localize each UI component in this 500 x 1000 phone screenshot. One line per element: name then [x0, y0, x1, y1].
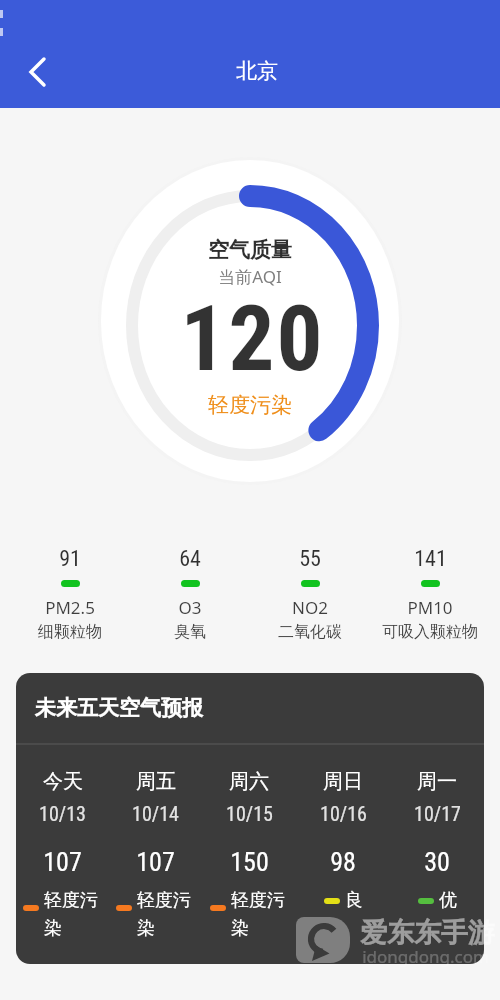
staticText: 细颗粒物 — [38, 622, 102, 642]
staticText: 爱东东手游 — [360, 916, 495, 950]
staticText: O3 — [178, 596, 202, 619]
staticText: 10/13 — [39, 802, 86, 825]
staticText: 未来五天空气预报 — [35, 695, 203, 721]
staticText: 空气质量 — [208, 237, 292, 263]
staticText: 周六 — [229, 769, 269, 794]
staticText: 10/17 — [414, 802, 461, 825]
staticText: 150 — [230, 847, 269, 877]
staticText: 良 — [345, 889, 363, 912]
staticText: 臭氧 — [174, 622, 206, 642]
staticText: 周五 — [136, 769, 176, 794]
staticText: 当前AQI — [218, 265, 282, 288]
staticText: 64 — [179, 546, 201, 572]
staticText: 10/14 — [132, 802, 179, 825]
staticText: 10/16 — [320, 802, 367, 825]
staticText: PM2.5 — [45, 596, 95, 619]
staticText: 周日 — [323, 769, 363, 794]
staticText: 周一 — [417, 769, 457, 794]
staticText: 二氧化碳 — [278, 622, 342, 642]
staticText: 120 — [180, 286, 325, 388]
staticText: NO2 — [292, 596, 328, 619]
staticText: 141 — [414, 546, 447, 572]
staticText: 北京 — [236, 58, 278, 84]
staticText: 30 — [424, 847, 450, 877]
staticText: 10/15 — [226, 802, 273, 825]
staticText: idongdong.com — [362, 945, 489, 968]
staticText: 轻度污染 — [44, 889, 102, 939]
staticText: 轻度污染 — [137, 889, 195, 939]
staticText: 107 — [43, 847, 82, 877]
button[interactable] — [16, 51, 58, 93]
staticText: 轻度污染 — [231, 889, 289, 939]
staticText: 107 — [136, 847, 175, 877]
staticText: 轻度污染 — [208, 392, 292, 416]
staticText: 优 — [439, 889, 457, 912]
staticText: PM10 — [407, 596, 453, 619]
staticText: 98 — [330, 847, 356, 877]
staticText: 55 — [299, 546, 321, 572]
staticText: 91 — [59, 546, 81, 572]
staticText: 今天 — [43, 769, 83, 794]
staticText: 可吸入颗粒物 — [382, 622, 478, 642]
